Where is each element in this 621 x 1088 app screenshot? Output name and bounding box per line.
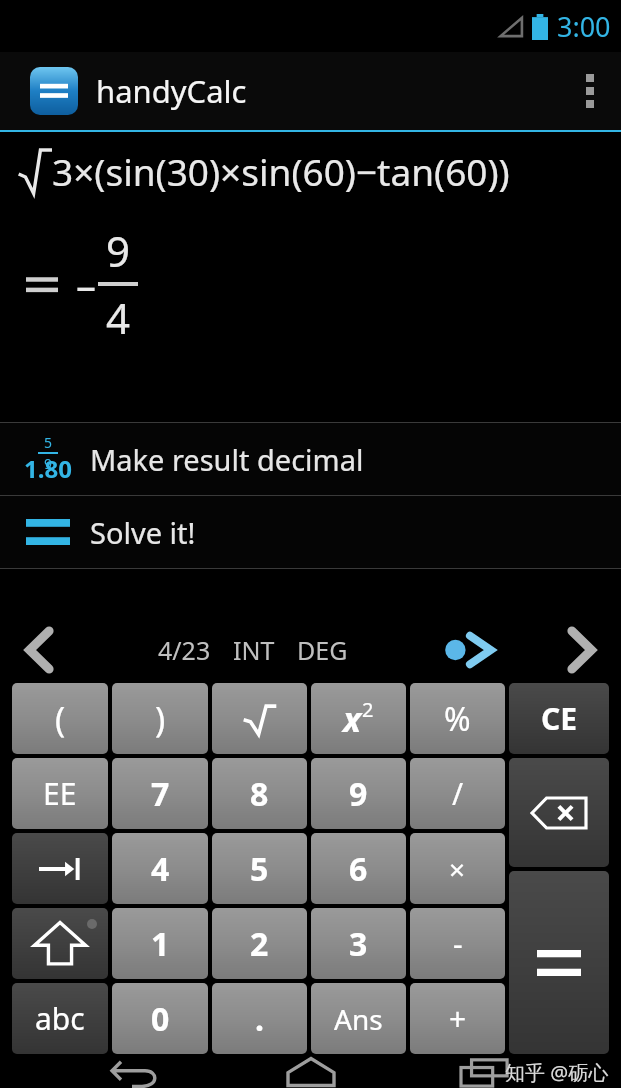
button[interactable]: 5 [212, 833, 307, 904]
staticText: 1.80 [24, 452, 72, 485]
staticText: 7 [151, 772, 170, 816]
staticText: 知乎 @砺心 [505, 1059, 609, 1086]
button[interactable]: More options [559, 52, 621, 130]
staticText: abc [35, 998, 85, 1039]
button[interactable]: x squared [311, 683, 406, 754]
staticText: handyCalc [96, 70, 247, 112]
button[interactable]: EE [12, 758, 108, 829]
button[interactable]: 5 [0, 423, 621, 495]
staticText: Solve it! [90, 513, 196, 552]
staticText: INT [233, 633, 275, 667]
button[interactable]: / [410, 758, 505, 829]
staticText: x [343, 696, 362, 742]
button[interactable]: 4 [112, 833, 208, 904]
staticText: 2 [362, 696, 374, 723]
staticText: EE [43, 773, 77, 814]
staticText: - [453, 923, 463, 964]
button[interactable]: 6 [311, 833, 406, 904]
button[interactable]: Solve it! [0, 496, 621, 568]
staticText: 4 [151, 847, 170, 891]
staticText: 5 [250, 847, 269, 891]
staticText: 6 [349, 847, 368, 891]
staticText: . [255, 997, 264, 1041]
staticText: CE [541, 698, 578, 739]
staticText: Ans [334, 1000, 383, 1038]
button[interactable]: Ans [311, 983, 406, 1054]
button[interactable]: 2 [212, 908, 307, 979]
button[interactable]: % [410, 683, 505, 754]
button[interactable]: Square root [212, 683, 307, 754]
button[interactable]: ) [112, 683, 208, 754]
button[interactable]: ( [12, 683, 108, 754]
staticText: Make result decimal [90, 440, 364, 479]
button[interactable]: 3 [311, 908, 406, 979]
button[interactable]: Back [97, 1056, 175, 1088]
staticText: 9 [44, 454, 53, 473]
staticText: % [444, 697, 471, 741]
button[interactable]: 9 [311, 758, 406, 829]
button[interactable]: . [212, 983, 307, 1054]
button[interactable]: Next [555, 624, 607, 676]
button[interactable]: Previous [14, 624, 66, 676]
button[interactable]: Backspace [509, 758, 609, 867]
staticText: 3 [349, 922, 368, 966]
staticText: ( [55, 696, 66, 742]
staticText: 9 [349, 772, 368, 816]
staticText: + [449, 998, 467, 1039]
staticText: ) [155, 696, 166, 742]
button[interactable]: 7 [112, 758, 208, 829]
button[interactable]: Home [272, 1056, 350, 1088]
button[interactable]: CE [509, 683, 609, 754]
button[interactable]: 1 [112, 908, 208, 979]
button[interactable]: abc [12, 983, 108, 1054]
staticText: 1 [151, 922, 170, 966]
button[interactable]: - [410, 908, 505, 979]
staticText: 8 [250, 772, 269, 816]
staticText: × [449, 850, 466, 888]
staticText: 4 [106, 289, 131, 346]
staticText: 2 [250, 922, 269, 966]
staticText: 3×(sin(30)×sin(60)−tan(60)) [52, 146, 510, 196]
button[interactable]: + [410, 983, 505, 1054]
staticText: / [452, 773, 464, 814]
staticText: 4/23 [158, 633, 211, 667]
staticText: 0 [151, 997, 170, 1041]
button[interactable]: Step forward [441, 620, 501, 680]
button[interactable]: 8 [212, 758, 307, 829]
staticText: 5 [44, 433, 53, 452]
button[interactable]: Equals [509, 871, 609, 1054]
button[interactable]: × [410, 833, 505, 904]
staticText: 9 [106, 222, 131, 279]
button[interactable]: 0 [112, 983, 208, 1054]
staticText: – [76, 257, 96, 311]
staticText: DEG [297, 633, 348, 667]
button[interactable]: Shift [12, 908, 108, 979]
staticText: 3:00 [557, 8, 611, 45]
button[interactable]: Recents [446, 1056, 524, 1088]
button[interactable]: Tab [12, 833, 108, 904]
